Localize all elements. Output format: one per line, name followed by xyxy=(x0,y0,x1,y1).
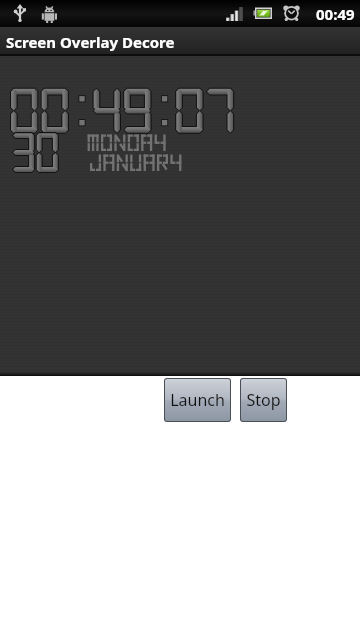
staticText: Screen Overlay Decore xyxy=(6,32,175,52)
staticText: 00:49 xyxy=(316,4,355,24)
staticText: Launch xyxy=(170,389,225,411)
button[interactable]: Launch xyxy=(165,379,230,421)
staticText: Stop xyxy=(246,389,281,411)
button[interactable]: Stop xyxy=(241,379,286,421)
